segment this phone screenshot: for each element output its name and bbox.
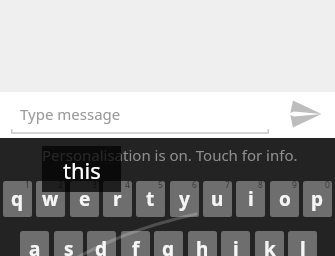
staticText: 9	[292, 181, 297, 191]
staticText: q	[11, 186, 24, 212]
button[interactable]: s	[54, 231, 83, 256]
button[interactable]: 0	[303, 181, 332, 217]
staticText: e	[79, 186, 91, 212]
button[interactable]: Send	[287, 96, 323, 132]
button[interactable]: 9	[270, 181, 299, 217]
button[interactable]: Personalisation is on. Touch for info.	[0, 138, 335, 256]
staticText: Type message	[20, 104, 121, 124]
button[interactable]: 7	[203, 181, 232, 217]
staticText: h	[196, 236, 209, 256]
staticText: 2	[58, 181, 63, 191]
button[interactable]: l	[288, 231, 317, 256]
staticText: p	[311, 186, 324, 212]
staticText: 6	[192, 181, 197, 191]
staticText: this	[63, 155, 101, 185]
staticText: 0	[325, 181, 330, 191]
button[interactable]: a	[20, 231, 49, 256]
button[interactable]: 4	[103, 181, 132, 217]
button[interactable]: 2	[36, 181, 65, 217]
staticText: 5	[158, 181, 163, 191]
staticText: Personalisation is on. Touch for info.	[42, 145, 298, 165]
staticText: 4	[125, 181, 130, 191]
staticText: f	[132, 236, 140, 256]
button[interactable]: g	[154, 231, 183, 256]
button[interactable]: 1	[3, 181, 32, 217]
button[interactable]: 8	[236, 181, 265, 217]
staticText: g	[162, 236, 175, 256]
button[interactable]: 3	[70, 181, 99, 217]
button[interactable]: k	[255, 231, 284, 256]
staticText: 7	[225, 181, 230, 191]
button[interactable]: 5	[136, 181, 165, 217]
staticText: t	[146, 186, 155, 212]
staticText: o	[279, 186, 291, 212]
staticText: s	[64, 236, 74, 256]
button[interactable]: h	[188, 231, 217, 256]
staticText: j	[233, 236, 239, 256]
staticText: l	[300, 236, 306, 256]
staticText: 3	[92, 181, 97, 191]
staticText: w	[42, 186, 59, 212]
staticText: 8	[258, 181, 263, 191]
staticText: y	[179, 186, 190, 212]
staticText: r	[113, 186, 122, 212]
staticText: u	[211, 186, 224, 212]
staticText: a	[29, 236, 41, 256]
staticText: 1	[25, 181, 30, 191]
staticText: k	[264, 236, 276, 256]
button[interactable]: d	[87, 231, 116, 256]
staticText: d	[95, 236, 108, 256]
staticText: i	[248, 186, 254, 212]
button[interactable]: j	[221, 231, 250, 256]
button[interactable]: 6	[170, 181, 199, 217]
button[interactable]: f	[121, 231, 150, 256]
